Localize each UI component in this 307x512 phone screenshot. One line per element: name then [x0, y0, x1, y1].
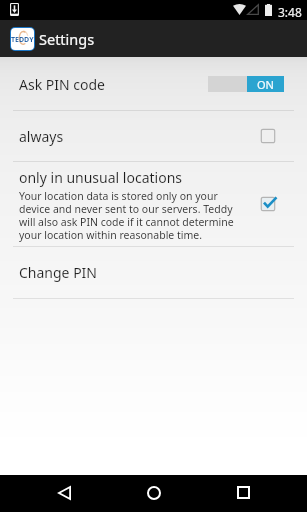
- button[interactable]: Ask PIN code, on: [208, 76, 284, 92]
- staticText: 3:48: [278, 4, 302, 20]
- button[interactable]: Checked: [253, 189, 283, 219]
- staticText: TEDDY: [11, 35, 34, 45]
- button[interactable]: Recent apps: [199, 475, 287, 512]
- staticText: Change PIN: [19, 263, 98, 282]
- button[interactable]: only in unusual locations: [0, 162, 307, 246]
- button[interactable]: always: [0, 111, 307, 161]
- staticText: only in unusual locations: [19, 168, 182, 187]
- button[interactable]: Home: [110, 475, 198, 512]
- button[interactable]: Change PIN: [0, 247, 307, 298]
- staticText: Ask PIN code: [19, 75, 105, 94]
- staticText: Your location data is stored only on you…: [19, 189, 234, 242]
- button[interactable]: Ask PIN code: [0, 57, 307, 110]
- staticText: ON: [257, 77, 274, 92]
- staticText: Settings: [39, 29, 95, 49]
- staticText: always: [19, 127, 64, 146]
- button[interactable]: Unchecked: [253, 121, 283, 151]
- other: Download notification: [10, 3, 19, 16]
- button[interactable]: Back: [20, 475, 108, 512]
